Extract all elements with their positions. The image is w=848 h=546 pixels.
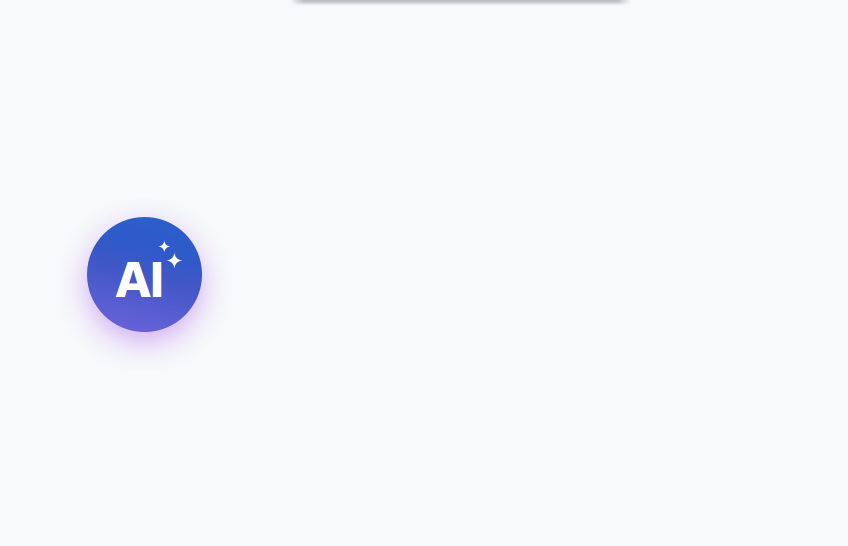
staticText: AI bbox=[115, 250, 163, 309]
button[interactable]: AI assistant bbox=[87, 217, 202, 332]
